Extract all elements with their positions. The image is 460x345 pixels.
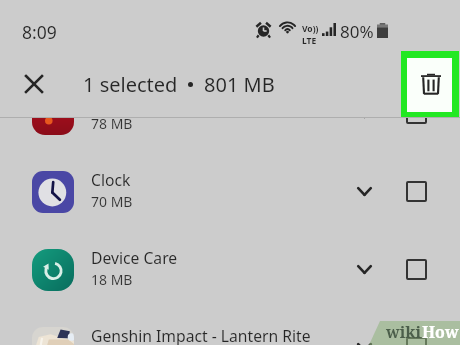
staticText: LTE [302, 35, 317, 47]
staticText: Vo)) [302, 23, 319, 35]
button[interactable]: Close selection [14, 64, 53, 103]
button[interactable]: Expand details [346, 91, 382, 136]
staticText: Clock [91, 169, 131, 190]
staticText: 80% [340, 20, 374, 43]
button[interactable]: Device Care [0, 231, 460, 308]
staticText: Genshin Impact - Lantern Rite [91, 325, 311, 345]
staticText: 70 MB [91, 192, 133, 211]
button[interactable]: Genshin Impact - Lantern Rite [0, 309, 460, 345]
button[interactable]: App entry [0, 75, 460, 152]
staticText: 1 selected [83, 71, 178, 98]
button[interactable]: Select app [396, 91, 436, 136]
button[interactable]: Select app [396, 247, 436, 292]
button[interactable]: Expand details [346, 169, 382, 214]
button[interactable]: Select app [396, 169, 436, 214]
staticText: 18 MB [91, 270, 133, 289]
button[interactable]: Expand details [346, 247, 382, 292]
button[interactable]: 1 selected [78, 63, 290, 103]
staticText: 78 MB [91, 114, 133, 133]
staticText: 801 MB [204, 71, 275, 98]
button[interactable]: Clock [0, 153, 460, 230]
button[interactable]: Expand details [346, 325, 382, 345]
staticText: Device Care [91, 247, 178, 268]
staticText: 8:09 [22, 20, 57, 44]
staticText: wiki [386, 321, 422, 343]
button[interactable]: Select app [396, 325, 436, 345]
button[interactable]: Delete selected apps [407, 58, 452, 112]
staticText: How [422, 321, 459, 343]
